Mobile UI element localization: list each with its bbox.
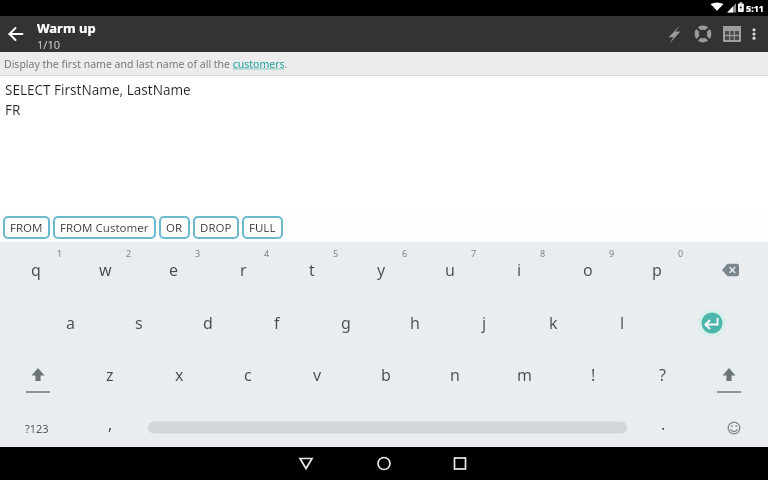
staticText: 4	[264, 247, 270, 259]
button[interactable]: DROP	[193, 216, 239, 239]
button[interactable]: w	[81, 250, 129, 290]
button[interactable]	[706, 246, 754, 294]
button[interactable]: u	[426, 250, 474, 290]
button[interactable]	[738, 16, 764, 52]
staticText: k	[549, 312, 558, 334]
staticText: x	[175, 364, 184, 386]
button[interactable]: o	[564, 250, 612, 290]
staticText: 6	[402, 247, 408, 259]
staticText: 7	[471, 247, 477, 259]
staticText: w	[99, 259, 112, 281]
button[interactable]: !	[569, 355, 617, 395]
staticText: 9	[609, 247, 615, 259]
staticText: m	[517, 364, 532, 386]
button[interactable]: c	[224, 355, 272, 395]
staticText: n	[450, 364, 460, 386]
staticText: SELECT FirstName, LastName	[5, 81, 191, 99]
staticText: 8	[540, 247, 546, 259]
staticText: d	[203, 312, 213, 334]
staticText: Warm up	[37, 19, 96, 37]
button[interactable]: r	[219, 250, 267, 290]
staticText: r	[240, 259, 247, 281]
button[interactable]: v	[293, 355, 341, 395]
staticText: t	[309, 259, 315, 281]
button[interactable]	[686, 16, 712, 52]
staticText: v	[313, 364, 322, 386]
staticText: q	[31, 259, 41, 281]
button[interactable]	[148, 414, 627, 434]
staticText: g	[341, 312, 351, 334]
button[interactable]: FROM Customer	[53, 216, 156, 239]
staticText: ,	[108, 413, 113, 435]
button[interactable]	[688, 299, 736, 347]
staticText: s	[135, 312, 143, 334]
button[interactable]: t	[288, 250, 336, 290]
button[interactable]	[444, 448, 476, 480]
staticText: FR	[5, 101, 21, 119]
staticText: FROM Customer	[60, 220, 149, 236]
staticText: e	[169, 259, 179, 281]
button[interactable]: h	[391, 303, 439, 343]
staticText: !	[591, 364, 596, 386]
button[interactable]	[660, 16, 686, 52]
staticText: 2	[126, 247, 132, 259]
button[interactable]: q	[12, 250, 60, 290]
button[interactable]: f	[253, 303, 301, 343]
button[interactable]: ?	[638, 355, 686, 395]
button[interactable]: FULL	[242, 216, 283, 239]
button[interactable]: g	[322, 303, 370, 343]
button[interactable]: ,	[86, 404, 134, 444]
staticText: FULL	[249, 220, 276, 236]
staticText: ?123	[25, 421, 49, 436]
staticText: DROP	[200, 220, 232, 236]
staticText: i	[517, 259, 522, 281]
staticText: OR	[166, 220, 183, 236]
button[interactable]: s	[115, 303, 163, 343]
staticText: ?	[659, 364, 666, 386]
staticText: c	[244, 364, 252, 386]
staticText: a	[66, 312, 75, 334]
staticText: 1/10	[37, 37, 60, 52]
button[interactable]: l	[598, 303, 646, 343]
button[interactable]: b	[362, 355, 410, 395]
button[interactable]: y	[357, 250, 405, 290]
button[interactable]: ?123	[13, 408, 61, 448]
staticText: 5	[333, 247, 339, 259]
button[interactable]: m	[500, 355, 548, 395]
staticText: o	[583, 259, 593, 281]
button[interactable]: k	[529, 303, 577, 343]
staticText: j	[482, 312, 487, 334]
staticText: z	[106, 364, 114, 386]
button[interactable]: p	[633, 250, 681, 290]
staticText: .	[661, 413, 666, 435]
staticText: 5:11	[746, 2, 764, 14]
button[interactable]	[292, 448, 324, 480]
button[interactable]: j	[460, 303, 508, 343]
button[interactable]	[712, 16, 738, 52]
button[interactable]: i	[495, 250, 543, 290]
button[interactable]	[14, 351, 62, 399]
staticText: h	[410, 312, 420, 334]
button[interactable]: n	[431, 355, 479, 395]
staticText: f	[274, 312, 280, 334]
button[interactable]: a	[46, 303, 94, 343]
button[interactable]: FROM	[3, 216, 50, 239]
staticText: l	[620, 312, 625, 334]
button[interactable]: z	[86, 355, 134, 395]
button[interactable]	[2, 20, 30, 48]
staticText: FROM	[10, 220, 43, 236]
button[interactable]: d	[184, 303, 232, 343]
button[interactable]: .	[639, 404, 687, 444]
button[interactable]: e	[150, 250, 198, 290]
staticText: 0	[678, 247, 684, 259]
button[interactable]	[368, 448, 400, 480]
button[interactable]	[705, 351, 753, 399]
button[interactable]: x	[155, 355, 203, 395]
staticText: b	[381, 364, 391, 386]
button[interactable]	[710, 404, 758, 452]
staticText: 1	[57, 247, 63, 259]
staticText: p	[652, 259, 662, 281]
staticText: 3	[195, 247, 201, 259]
button[interactable]: OR	[159, 216, 190, 239]
button[interactable]: Display the first name and last name of …	[4, 57, 288, 71]
